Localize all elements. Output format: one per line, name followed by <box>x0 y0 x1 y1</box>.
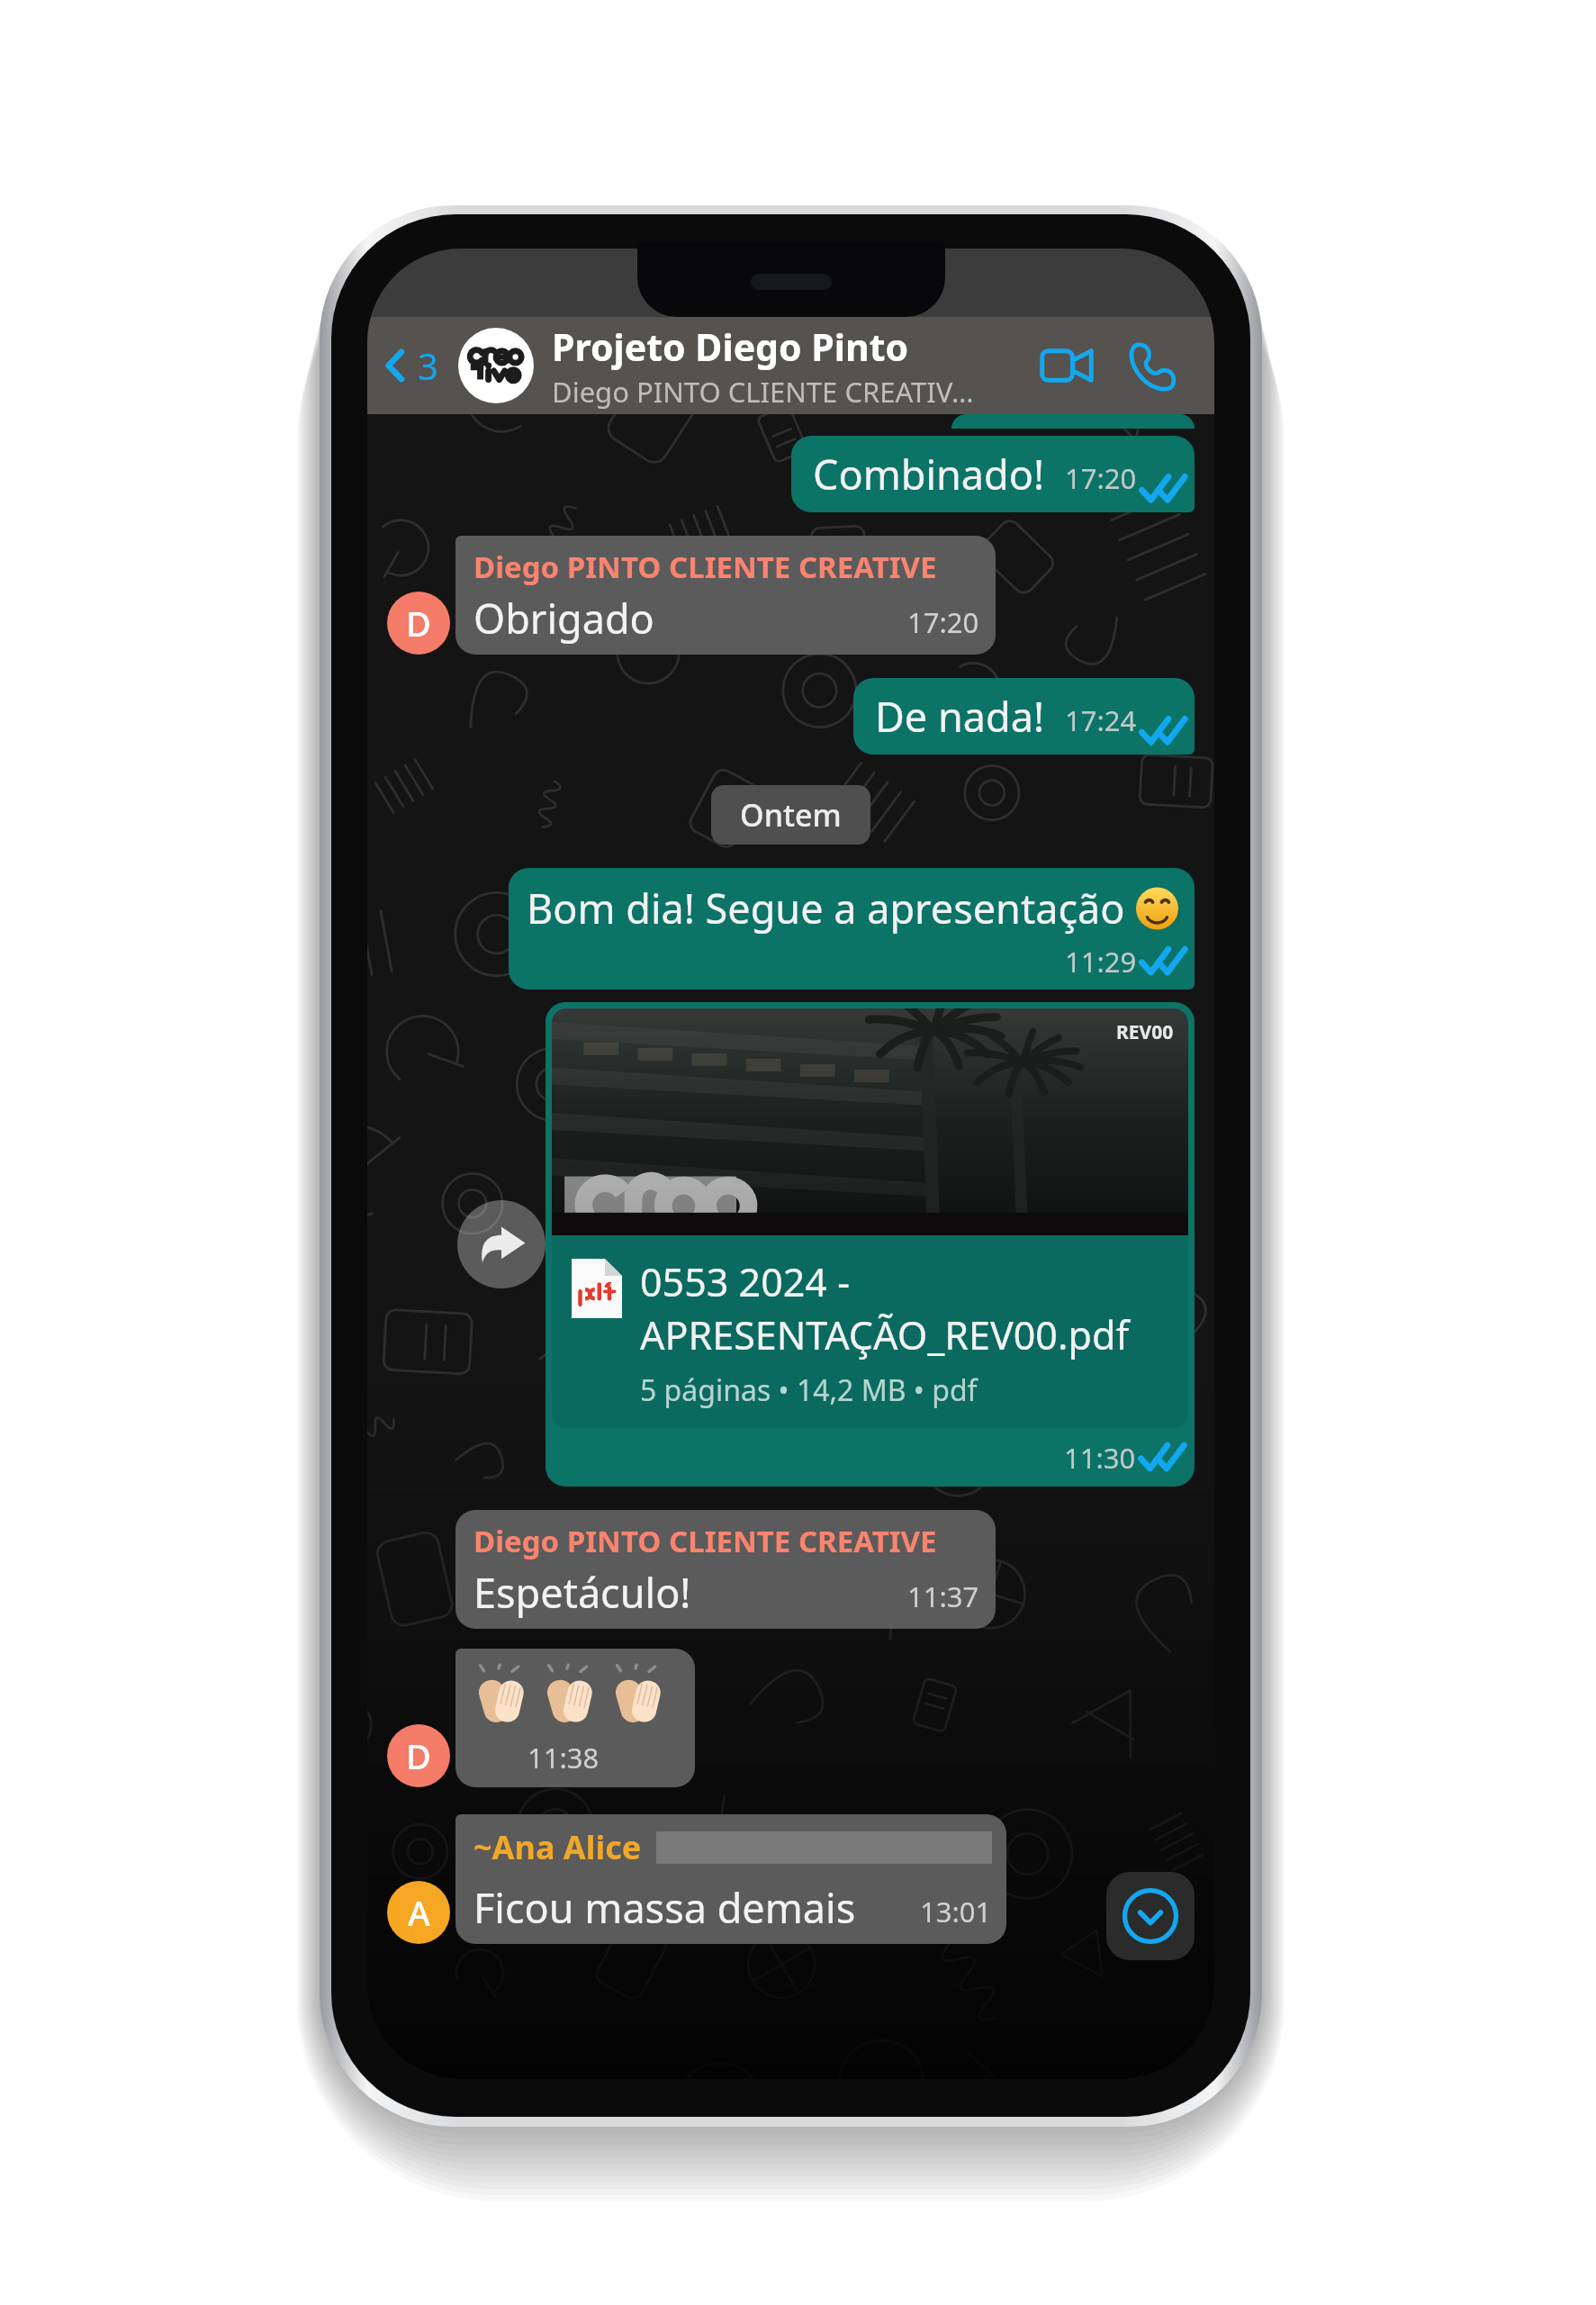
button[interactable]: Bom dia! Segue a apresentação <box>509 868 1195 990</box>
staticText: 11:38 <box>527 1739 600 1776</box>
button[interactable]: Back, 3 unread <box>378 332 446 399</box>
staticText: APRESENTAÇÃO_REV00.pdf <box>640 1308 1130 1361</box>
staticText: Obrigado <box>473 591 654 646</box>
staticText: Combinado! <box>813 447 1045 502</box>
staticText: 3 <box>418 341 438 390</box>
staticText: A <box>408 1889 430 1936</box>
staticText: 11:30 <box>1064 1439 1136 1477</box>
button[interactable]: REV00 <box>546 1002 1195 1487</box>
staticText: 5 páginas • 14,2 MB • pdf <box>640 1370 978 1410</box>
staticText: Diego PINTO CLIENTE CREATIV… <box>552 373 974 411</box>
staticText: Espetáculo! <box>473 1565 691 1620</box>
staticText: 17:20 <box>907 603 979 641</box>
staticText: De nada! <box>875 689 1045 744</box>
staticText: Diego PINTO CLIENTE CREATIVE <box>473 547 937 587</box>
staticText: Diego PINTO CLIENTE CREATIVE <box>473 1521 937 1561</box>
staticText: ~Ana Alice <box>473 1825 642 1869</box>
staticText: D <box>406 1732 431 1779</box>
button[interactable]: D <box>387 1724 450 1787</box>
staticText: Bom dia! Segue a apresentação <box>527 881 1136 936</box>
button[interactable]: Projeto Diego Pinto <box>552 321 1027 411</box>
button[interactable]: ~Ana Alice <box>455 1814 1006 1944</box>
button[interactable]: Diego PINTO CLIENTE CREATIVE <box>455 536 996 655</box>
button[interactable]: Voice call <box>1114 326 1193 405</box>
staticText: 0553 2024 - <box>640 1255 850 1308</box>
staticText: 17:20 <box>1065 459 1137 497</box>
button[interactable]: Ontem <box>711 785 870 845</box>
button[interactable]: De nada! <box>853 678 1195 755</box>
staticText: 11:29 <box>1065 943 1137 981</box>
staticText: Projeto Diego Pinto <box>552 321 909 372</box>
button[interactable]: A <box>387 1881 450 1944</box>
button[interactable]: 11:38 <box>455 1649 695 1787</box>
button[interactable]: Scroll to bottom <box>1106 1872 1195 1960</box>
staticText: 11:37 <box>907 1577 979 1615</box>
staticText: REV00 <box>1116 1019 1174 1045</box>
button[interactable]: Video call <box>1027 326 1106 405</box>
staticText: 13:01 <box>920 1893 992 1930</box>
button[interactable] <box>458 328 534 403</box>
button[interactable]: Forward <box>457 1200 546 1288</box>
staticText: Ficou massa demais <box>473 1880 856 1935</box>
staticText: D <box>406 600 431 646</box>
button[interactable]: Diego PINTO CLIENTE CREATIVE <box>455 1510 996 1629</box>
button[interactable]: D <box>387 592 450 655</box>
staticText: 17:24 <box>1065 701 1137 739</box>
button[interactable] <box>951 414 1195 429</box>
button[interactable]: Combinado! <box>791 436 1195 512</box>
staticText: Ontem <box>740 794 842 836</box>
